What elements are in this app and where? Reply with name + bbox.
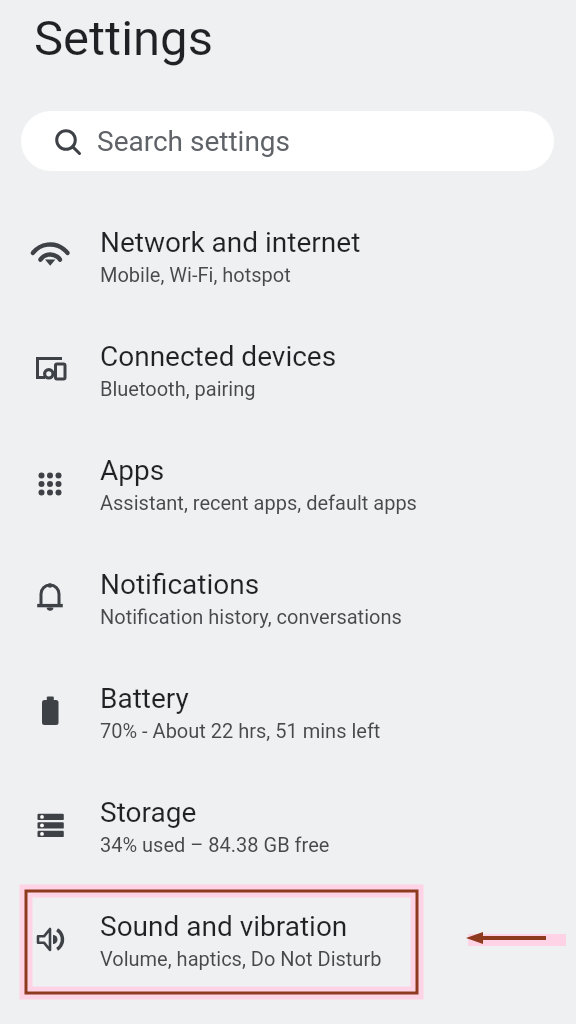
button[interactable]: Notifications <box>0 541 576 655</box>
staticText: Volume, haptics, Do Not Disturb <box>100 947 382 970</box>
staticText: Assistant, recent apps, default apps <box>100 491 417 514</box>
staticText: Network and internet <box>100 226 361 259</box>
staticText: Mobile, Wi-Fi, hotspot <box>100 263 291 286</box>
staticText: Notification history, conversations <box>100 605 402 628</box>
button[interactable]: Apps <box>0 427 576 541</box>
staticText: 34% used – 84.38 GB free <box>100 833 330 856</box>
staticText: Apps <box>100 454 165 487</box>
button[interactable]: Connected devices <box>0 313 576 427</box>
staticText: Storage <box>100 796 197 829</box>
button[interactable]: Search settings <box>21 111 554 171</box>
button[interactable]: Network and internet <box>0 199 576 313</box>
button[interactable]: Battery <box>0 655 576 769</box>
button[interactable]: Storage <box>0 769 576 883</box>
staticText: Settings <box>34 10 213 67</box>
staticText: Search settings <box>97 125 291 158</box>
button[interactable]: Sound and vibration <box>0 883 576 997</box>
staticText: Notifications <box>100 568 260 601</box>
staticText: 70% - About 22 hrs, 51 mins left <box>100 719 381 742</box>
staticText: Connected devices <box>100 340 337 373</box>
staticText: Sound and vibration <box>100 910 348 943</box>
staticText: Bluetooth, pairing <box>100 377 256 400</box>
staticText: Battery <box>100 682 189 715</box>
